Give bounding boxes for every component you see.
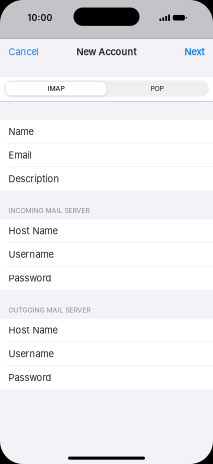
staticText: Description	[9, 173, 60, 184]
button[interactable]: Cancel	[0, 40, 47, 64]
staticText: Cancel	[9, 46, 39, 58]
staticText: 10:00	[28, 12, 53, 23]
button[interactable]: Host Name	[0, 319, 213, 342]
staticText: Email	[9, 149, 32, 161]
button[interactable]: Password	[0, 266, 213, 290]
button[interactable]: Description	[0, 167, 213, 191]
button[interactable]: Username	[0, 243, 213, 266]
button[interactable]: Email	[0, 144, 213, 167]
staticText: IMAP	[47, 84, 64, 93]
button[interactable]: Password	[0, 366, 213, 389]
staticText: Password	[9, 273, 52, 284]
staticText: Username	[9, 249, 54, 260]
staticText: Host Name	[9, 225, 58, 236]
button[interactable]: IMAP	[5, 82, 106, 95]
button[interactable]: Username	[0, 342, 213, 366]
staticText: POP	[151, 84, 164, 93]
button[interactable]: Name	[0, 120, 213, 144]
staticText: OUTGOING MAIL SERVER	[9, 306, 91, 314]
staticText: Name	[9, 126, 34, 137]
staticText: Host Name	[9, 325, 58, 336]
staticText: INCOMING MAIL SERVER	[9, 206, 90, 215]
staticText: Next	[184, 46, 204, 58]
button[interactable]: Host Name	[0, 219, 213, 243]
staticText: Password	[9, 372, 52, 383]
staticText: Username	[9, 348, 54, 359]
button[interactable]: POP	[106, 82, 208, 95]
staticText: New Account	[76, 46, 136, 58]
button[interactable]: Next	[176, 40, 213, 64]
